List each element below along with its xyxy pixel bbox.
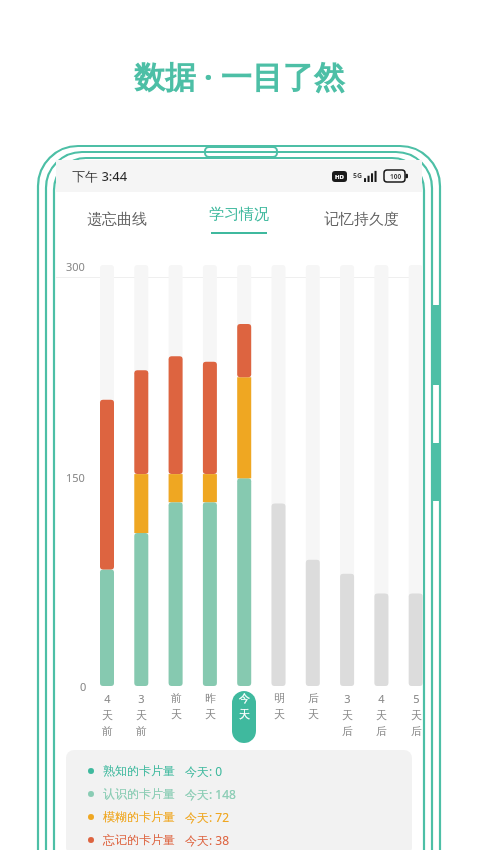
staticText: 天: [171, 707, 182, 721]
staticText: 4: [104, 691, 111, 706]
staticText: 4: [378, 691, 385, 706]
staticText: 今天: 38: [185, 832, 230, 848]
staticText: 今: [239, 691, 250, 705]
button[interactable]: 4: [369, 691, 393, 743]
button[interactable]: 前: [164, 691, 188, 743]
staticText: 后: [411, 724, 422, 738]
staticText: 5G: [353, 171, 363, 181]
button[interactable]: 遗忘曲线: [56, 192, 178, 246]
staticText: 明: [274, 691, 285, 705]
staticText: 忘记的卡片量: [103, 832, 175, 847]
button[interactable]: 今: [232, 691, 256, 743]
staticText: 300: [66, 259, 85, 274]
staticText: 0: [80, 679, 87, 694]
staticText: 昨: [205, 691, 216, 705]
staticText: 天: [205, 707, 216, 721]
button[interactable]: 昨: [198, 691, 222, 743]
staticText: 100: [390, 172, 402, 181]
button[interactable]: 3: [335, 691, 359, 743]
staticText: 天: [411, 708, 422, 722]
button[interactable]: 5: [404, 691, 428, 743]
button[interactable]: 记忆持久度: [300, 192, 422, 246]
staticText: 数据 · 一目了然: [134, 55, 345, 97]
staticText: 150: [66, 470, 85, 485]
staticText: 后: [342, 724, 353, 738]
staticText: 天: [136, 708, 147, 722]
staticText: 记忆持久度: [324, 210, 399, 229]
button[interactable]: 明: [267, 691, 291, 743]
staticText: 天: [102, 708, 113, 722]
staticText: 今天: 72: [185, 809, 230, 825]
staticText: 天: [342, 708, 353, 722]
staticText: 学习情况: [209, 205, 269, 224]
staticText: 5: [413, 691, 420, 706]
staticText: 前: [136, 724, 147, 738]
staticText: 3: [344, 691, 351, 706]
button[interactable]: 4: [95, 691, 119, 743]
staticText: 下午 3:44: [72, 167, 128, 185]
staticText: 天: [308, 707, 319, 721]
button[interactable]: 熟知的卡片量: [66, 750, 412, 850]
staticText: 前: [171, 691, 182, 705]
staticText: 今天: 148: [185, 786, 236, 802]
button[interactable]: 3: [129, 691, 153, 743]
staticText: 认识的卡片量: [103, 786, 175, 801]
staticText: 今天: 0: [185, 763, 223, 779]
button[interactable]: 后: [301, 691, 325, 743]
staticText: 前: [102, 724, 113, 738]
staticText: 后: [376, 724, 387, 738]
staticText: 天: [376, 708, 387, 722]
staticText: 遗忘曲线: [87, 210, 147, 229]
staticText: 熟知的卡片量: [103, 763, 175, 778]
staticText: 天: [274, 707, 285, 721]
staticText: 3: [138, 691, 145, 706]
button[interactable]: 学习情况: [178, 192, 300, 246]
staticText: 模糊的卡片量: [103, 809, 175, 824]
staticText: HD: [335, 173, 344, 181]
staticText: 后: [308, 691, 319, 705]
staticText: 天: [239, 707, 250, 721]
